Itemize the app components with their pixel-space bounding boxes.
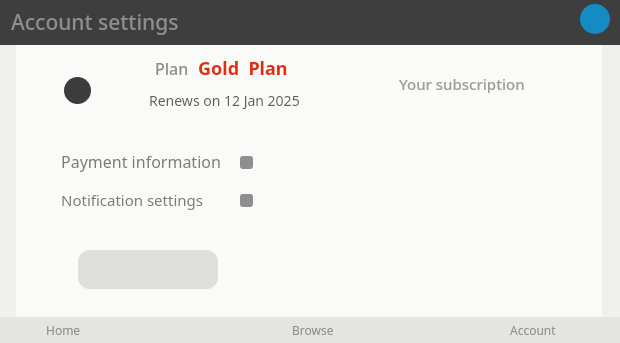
staticText: Home <box>46 322 81 338</box>
button[interactable]: Browse <box>292 317 334 343</box>
button[interactable]: Account <box>510 317 556 343</box>
button[interactable]: Payment information <box>61 150 253 174</box>
staticText: Renews on 12 Jan 2025 <box>149 91 300 110</box>
other: Open Payment information <box>240 156 253 169</box>
staticText: Notification settings <box>61 190 203 210</box>
other: Open Notification settings <box>240 194 253 207</box>
staticText: Account <box>510 322 556 338</box>
staticText: Payment information <box>61 151 221 173</box>
staticText: Your subscription <box>399 74 525 94</box>
staticText: Gold Plan <box>198 56 288 81</box>
staticText: Account settings <box>11 8 179 37</box>
button[interactable]: Notification settings <box>61 188 253 212</box>
button[interactable]: Profile <box>580 4 610 34</box>
button[interactable] <box>78 250 218 289</box>
button[interactable]: Home <box>46 317 81 343</box>
staticText: Plan <box>155 58 189 80</box>
staticText: Browse <box>292 322 334 338</box>
